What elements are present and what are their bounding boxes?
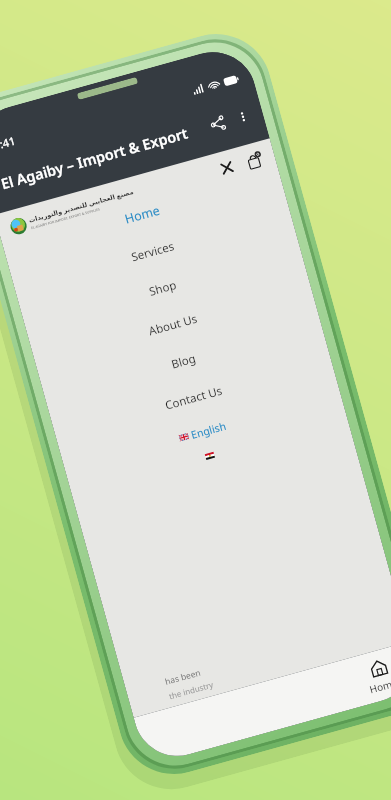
button[interactable]: Close menu [211,152,243,184]
staticText: Contact Us [163,382,224,414]
staticText: the industry [168,678,215,701]
staticText: Home [368,675,391,696]
button[interactable]: Cart [238,144,270,176]
staticText: Services [129,238,176,265]
button[interactable]: Home [340,646,391,705]
button[interactable]: Share [201,106,235,141]
button[interactable]: Services [10,195,296,308]
button[interactable]: Blog [40,305,326,418]
button[interactable]: مصنع العجايبي للتصدير والتوريدات [8,186,137,237]
button[interactable]: Home [0,158,285,272]
button[interactable]: Contact Us [50,342,336,455]
button[interactable]: More options [228,102,258,131]
staticText: About Us [147,311,199,339]
staticText: Home [123,202,162,228]
button[interactable]: About Us [30,268,316,381]
staticText: has been [164,666,202,688]
staticText: El Agaiby – Import & Export [0,122,191,193]
staticText: English [189,419,228,442]
button[interactable]: English [175,410,230,454]
staticText: EL AGAIBY FOR IMPORT, EXPORT & SUPPLIES [30,206,101,230]
button[interactable]: Shop [20,232,306,345]
staticText: Shop [147,277,179,300]
staticText: مصنع العجايبي للتصدير والتوريدات [28,187,135,225]
staticText: 9:41 [0,133,17,153]
button[interactable] [203,446,217,466]
staticText: Blog [169,350,198,372]
